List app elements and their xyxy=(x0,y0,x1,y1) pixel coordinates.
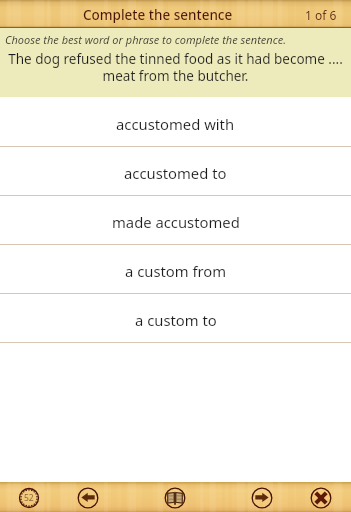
staticText: accustomed to xyxy=(124,163,227,183)
staticText: Complete the sentence xyxy=(83,6,233,24)
staticText: Choose the best word or phrase to comple… xyxy=(5,32,286,47)
staticText: a custom to xyxy=(135,310,217,330)
button[interactable]: Close xyxy=(308,485,334,511)
staticText: a custom from xyxy=(125,261,227,281)
button[interactable]: a custom to xyxy=(0,294,351,343)
button[interactable]: Previous question xyxy=(75,485,101,511)
staticText: made accustomed xyxy=(112,212,240,232)
button[interactable]: Next question xyxy=(249,485,275,511)
button[interactable]: accustomed with xyxy=(0,98,351,147)
staticText: The dog refused the tinned food as it ha… xyxy=(0,50,351,85)
button[interactable]: Dictionary xyxy=(162,485,188,511)
button[interactable]: Timer xyxy=(16,485,42,511)
button[interactable]: accustomed to xyxy=(0,147,351,196)
staticText: accustomed with xyxy=(116,114,235,134)
staticText: 52 xyxy=(24,492,34,504)
button[interactable]: a custom from xyxy=(0,245,351,294)
button[interactable]: made accustomed xyxy=(0,196,351,245)
staticText: 1 of 6 xyxy=(305,7,337,23)
